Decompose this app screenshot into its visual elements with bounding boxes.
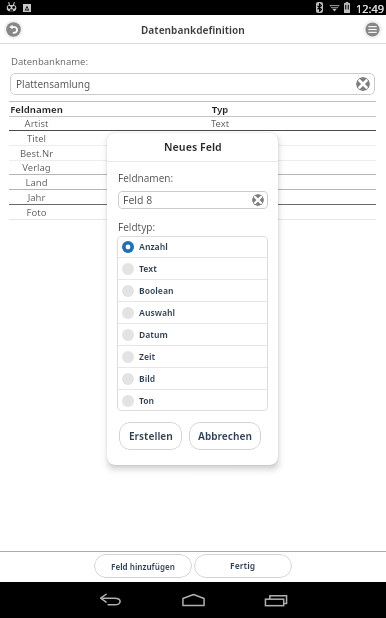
staticText: Feld hinzufügen <box>111 561 175 572</box>
staticText: Text <box>139 263 157 275</box>
staticText: Best.Nr <box>9 147 64 160</box>
staticText: 12:49 <box>356 1 385 16</box>
staticText: Abbrechen <box>198 429 252 443</box>
button[interactable]: Startbildschirm <box>171 586 215 614</box>
button[interactable]: Fertig <box>194 554 292 578</box>
button[interactable]: Menü <box>362 15 382 44</box>
button[interactable]: Text <box>117 258 268 279</box>
staticText: Erstellen <box>129 429 173 443</box>
button[interactable]: Plattensamlung <box>10 73 375 95</box>
button[interactable]: Feld 8 <box>118 191 268 209</box>
button[interactable]: Löschen <box>252 194 264 206</box>
staticText: Datenbankname: <box>11 55 89 68</box>
staticText: Artist <box>9 117 64 130</box>
button[interactable]: Best.Nr <box>9 146 376 160</box>
staticText: Datenbankdefinition <box>141 23 245 37</box>
button[interactable]: Boolean <box>117 280 268 301</box>
button[interactable]: Abbrechen <box>189 422 261 450</box>
staticText: Bild <box>139 373 156 385</box>
button[interactable]: Verlag <box>9 161 376 174</box>
staticText: Feldtyp: <box>118 220 156 234</box>
staticText <box>64 147 376 160</box>
button[interactable]: Datum <box>117 324 268 345</box>
staticText: Fertig <box>230 560 256 572</box>
button[interactable]: Anzahl <box>117 236 268 257</box>
button[interactable]: Zeit <box>117 346 268 367</box>
staticText: Feldnamen <box>9 103 64 116</box>
staticText: Foto <box>9 206 64 219</box>
staticText: Verlag <box>9 161 64 174</box>
staticText: Anzahl <box>139 241 168 253</box>
button[interactable]: Zurück <box>3 15 23 44</box>
staticText: Feld 8 <box>123 193 153 207</box>
staticText <box>64 191 376 204</box>
button[interactable]: Foto <box>9 205 376 219</box>
staticText: Zeit <box>139 351 156 363</box>
button[interactable]: Feld hinzufügen <box>94 554 192 578</box>
staticText: Titel <box>9 132 64 145</box>
staticText: Boolean <box>139 285 174 297</box>
button[interactable]: Erstellen <box>119 422 182 450</box>
button[interactable]: Zurück <box>90 586 132 614</box>
button[interactable]: Ton <box>117 390 268 411</box>
button[interactable]: Land <box>9 175 376 189</box>
staticText: Plattensamlung <box>16 77 91 91</box>
staticText: Typ <box>64 103 376 116</box>
staticText: Neues Feld <box>164 140 222 154</box>
staticText <box>64 176 376 189</box>
button[interactable]: Übersicht <box>254 586 298 614</box>
staticText: Text <box>64 117 376 130</box>
staticText: Feldnamen: <box>118 171 174 185</box>
staticText: Jahr <box>9 191 64 204</box>
staticText: Land <box>9 176 64 189</box>
button[interactable]: Löschen <box>356 77 370 91</box>
button[interactable]: Auswahl <box>117 302 268 323</box>
staticText <box>64 161 376 174</box>
button[interactable]: Jahr <box>9 190 376 204</box>
staticText: Ton <box>139 395 155 407</box>
staticText: Auswahl <box>139 307 176 319</box>
button[interactable]: Bild <box>117 368 268 389</box>
staticText <box>64 206 376 219</box>
staticText: Datum <box>139 329 168 341</box>
button[interactable]: Feldnamen <box>9 102 376 116</box>
staticText <box>64 132 376 145</box>
button[interactable]: Artist <box>9 117 376 130</box>
button[interactable]: Titel <box>9 131 376 145</box>
